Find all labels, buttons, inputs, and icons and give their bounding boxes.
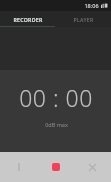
staticText: 00 : 00 — [19, 82, 93, 113]
staticText: RECORDER — [13, 16, 43, 23]
staticText: 0dB max — [45, 121, 68, 128]
button[interactable]: Record — [37, 152, 74, 182]
button[interactable]: RECORDER — [0, 11, 55, 27]
button[interactable]: Cancel — [74, 152, 111, 182]
staticText: PLAYER — [73, 16, 94, 23]
button[interactable]: PLAYER — [55, 11, 111, 27]
staticText: 18:06 — [84, 2, 99, 9]
